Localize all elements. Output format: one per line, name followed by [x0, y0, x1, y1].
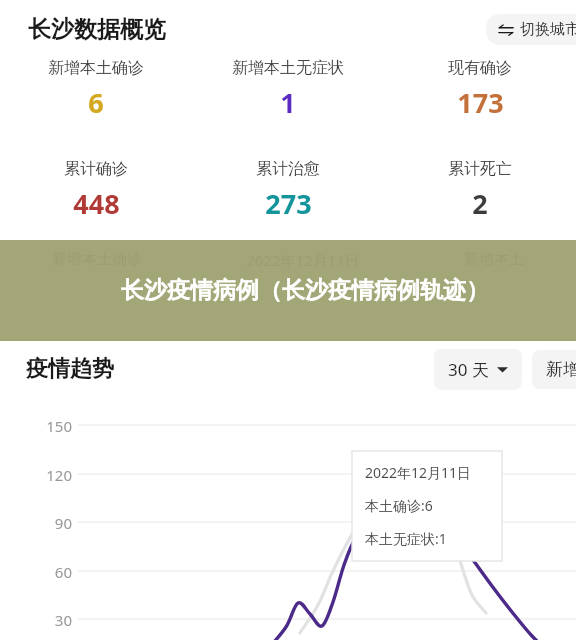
staticText: 新增本土确诊: [48, 58, 144, 78]
staticText: 90: [28, 513, 72, 533]
other: Switch city: [498, 22, 514, 38]
staticText: 273: [265, 185, 312, 222]
button[interactable]: 长沙疫情病例（长沙疫情病例轨迹）: [0, 240, 576, 341]
button[interactable]: 新增: [532, 350, 576, 389]
staticText: 1: [280, 84, 296, 121]
staticText: 累计确诊: [64, 159, 128, 179]
staticText: 6: [88, 84, 104, 121]
staticText: 30: [28, 610, 72, 630]
staticText: 60: [28, 562, 72, 582]
staticText: 疫情趋势: [26, 355, 114, 383]
staticText: 长沙数据概览: [28, 15, 166, 44]
staticText: 新增: [546, 359, 576, 380]
staticText: 长沙疫情病例（长沙疫情病例轨迹）: [121, 276, 489, 305]
staticText: 新增本土无症状: [232, 58, 344, 78]
staticText: 切换城市: [520, 20, 576, 39]
staticText: 30 天: [448, 358, 489, 381]
staticText: 120: [28, 465, 72, 485]
staticText: 本土无症状:1: [365, 529, 447, 548]
button[interactable]: 30 天: [434, 349, 522, 390]
button[interactable]: Switch city: [486, 14, 576, 45]
staticText: 2022年12月11日: [365, 463, 472, 482]
staticText: 173: [457, 84, 504, 121]
staticText: 2: [472, 185, 488, 222]
staticText: 累计死亡: [448, 159, 512, 179]
staticText: 150: [28, 416, 72, 436]
staticText: 现有确诊: [448, 58, 512, 78]
staticText: 累计治愈: [256, 159, 320, 179]
staticText: 本土确诊:6: [365, 496, 433, 515]
staticText: 448: [73, 185, 120, 222]
